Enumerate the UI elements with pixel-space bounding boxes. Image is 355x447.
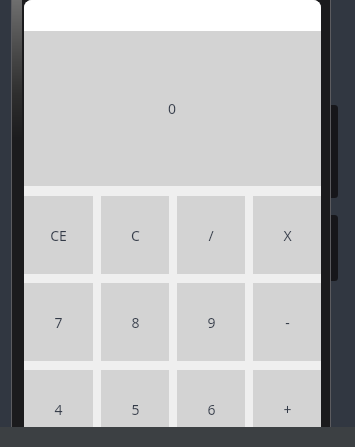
button[interactable]: X <box>253 196 321 274</box>
staticText: 5 <box>131 400 140 419</box>
staticText: 9 <box>207 313 216 332</box>
staticText: 0 <box>168 99 177 118</box>
button[interactable]: - <box>253 283 321 361</box>
staticText: CE <box>50 226 67 245</box>
staticText: X <box>283 226 292 245</box>
button[interactable]: 9 <box>177 283 245 361</box>
button[interactable]: + <box>253 370 321 427</box>
button[interactable]: 8 <box>101 283 169 361</box>
button[interactable]: / <box>177 196 245 274</box>
staticText: 7 <box>54 313 63 332</box>
staticText: C <box>131 226 140 245</box>
button[interactable]: 7 <box>24 283 93 361</box>
button[interactable]: C <box>101 196 169 274</box>
button[interactable]: CE <box>24 196 93 274</box>
staticText: 6 <box>207 400 216 419</box>
staticText: + <box>283 400 292 419</box>
button[interactable]: 6 <box>177 370 245 427</box>
staticText: / <box>208 226 214 245</box>
button[interactable]: 5 <box>101 370 169 427</box>
staticText: - <box>285 313 290 332</box>
staticText: 8 <box>131 313 140 332</box>
staticText: 4 <box>54 400 63 419</box>
button[interactable]: 4 <box>24 370 93 427</box>
